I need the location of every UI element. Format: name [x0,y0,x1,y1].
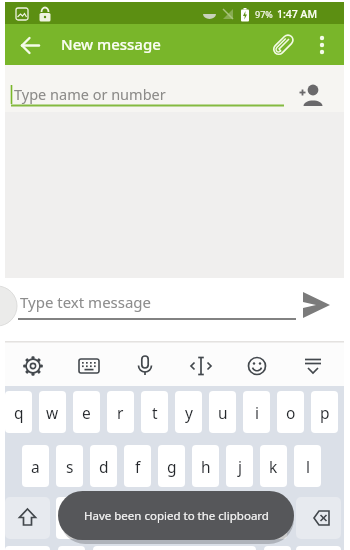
button[interactable] [260,24,304,65]
staticText: f [135,456,141,477]
button[interactable]: f [124,445,151,487]
button[interactable] [5,546,50,550]
button[interactable]: c [124,497,151,539]
button[interactable]: t [141,391,168,433]
staticText: e [82,402,91,423]
staticText: s [66,456,74,477]
staticText: m [266,508,281,529]
button[interactable] [5,341,61,386]
button[interactable] [296,546,341,550]
staticText: i [255,402,259,423]
staticText: v [168,508,176,529]
button[interactable] [295,286,339,326]
button[interactable] [306,24,344,65]
staticText: Have been copied to the clipboard [84,508,269,524]
staticText: u [218,402,228,423]
button[interactable]: s [56,445,83,487]
button[interactable] [173,341,230,386]
button[interactable] [264,546,291,550]
button[interactable]: a [22,445,49,487]
staticText: y [185,402,193,423]
staticText: Type name or number [14,84,166,104]
button[interactable]: r [107,391,134,433]
button[interactable] [230,341,287,386]
button[interactable]: m [260,497,287,539]
staticText: q [14,402,24,423]
button[interactable]: k [260,445,287,487]
button[interactable]: w [39,391,66,433]
staticText: r [117,402,124,423]
button[interactable]: x [90,497,117,539]
button[interactable]: z [56,497,83,539]
button[interactable] [117,341,173,386]
button[interactable]: o [277,391,304,433]
staticText: h [201,456,211,477]
button[interactable] [287,341,344,386]
staticText: x [99,508,108,529]
button[interactable]: d [90,445,117,487]
staticText: p [320,402,330,423]
button[interactable] [5,24,53,65]
button[interactable] [61,341,117,386]
staticText: New message [61,34,161,54]
staticText: 97% [255,8,273,20]
button[interactable]: u [209,391,236,433]
staticText: c [134,508,142,529]
button[interactable]: v [158,497,185,539]
staticText: g [167,456,177,477]
staticText: b [201,508,211,529]
button[interactable]: Type name or number [5,65,344,112]
button[interactable] [296,497,341,539]
button[interactable]: i [243,391,270,433]
button[interactable]: e [73,391,100,433]
button[interactable]: p [311,391,338,433]
staticText: a [31,456,40,477]
button[interactable]: h [192,445,219,487]
button[interactable]: g [158,445,185,487]
staticText: Type text message [20,292,152,312]
button[interactable] [58,546,85,550]
staticText: k [269,456,278,477]
staticText: o [286,402,296,423]
staticText: j [238,456,242,477]
staticText: w [46,402,59,423]
staticText: l [306,456,310,477]
button[interactable] [5,497,50,539]
button[interactable]: l [294,445,321,487]
button[interactable]: q [5,391,32,433]
button[interactable]: y [175,391,202,433]
staticText: t [152,402,158,423]
button[interactable]: b [192,497,219,539]
staticText: n [235,508,245,529]
button[interactable]: n [226,497,253,539]
button[interactable]: j [226,445,253,487]
staticText: 1:47 AM [277,7,318,21]
staticText: d [99,456,109,477]
